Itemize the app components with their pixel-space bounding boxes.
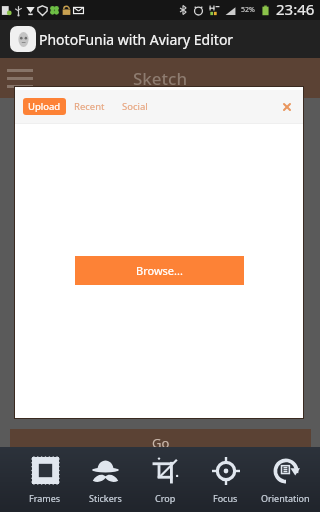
staticText: 52% xyxy=(241,5,255,15)
staticText: Go xyxy=(152,434,170,452)
button[interactable]: Go xyxy=(10,429,311,447)
staticText: Focus xyxy=(213,492,238,504)
button[interactable]: Frames xyxy=(15,447,75,512)
staticText: Sketch xyxy=(133,67,188,90)
button[interactable]: Upload xyxy=(23,98,66,115)
staticText: Stickers xyxy=(89,492,122,504)
staticText: Browse... xyxy=(136,263,183,278)
button[interactable]: Focus xyxy=(195,447,255,512)
button[interactable]: Close xyxy=(281,101,293,113)
staticText: Crop xyxy=(155,492,176,504)
staticText: Frames xyxy=(29,492,61,504)
staticText: PhotoFunia with Aviary Editor xyxy=(39,30,234,49)
button[interactable]: Orientation xyxy=(255,447,315,512)
staticText: 23:46 xyxy=(276,0,315,19)
button[interactable]: Recent xyxy=(69,96,110,117)
staticText: Orientation xyxy=(261,492,310,504)
button[interactable]: Crop xyxy=(135,447,195,512)
button[interactable]: Browse... xyxy=(75,256,244,285)
button[interactable]: Menu xyxy=(7,69,33,88)
button[interactable]: Stickers xyxy=(75,447,135,512)
button[interactable]: Social xyxy=(117,96,153,117)
staticText: Upload xyxy=(28,100,61,113)
